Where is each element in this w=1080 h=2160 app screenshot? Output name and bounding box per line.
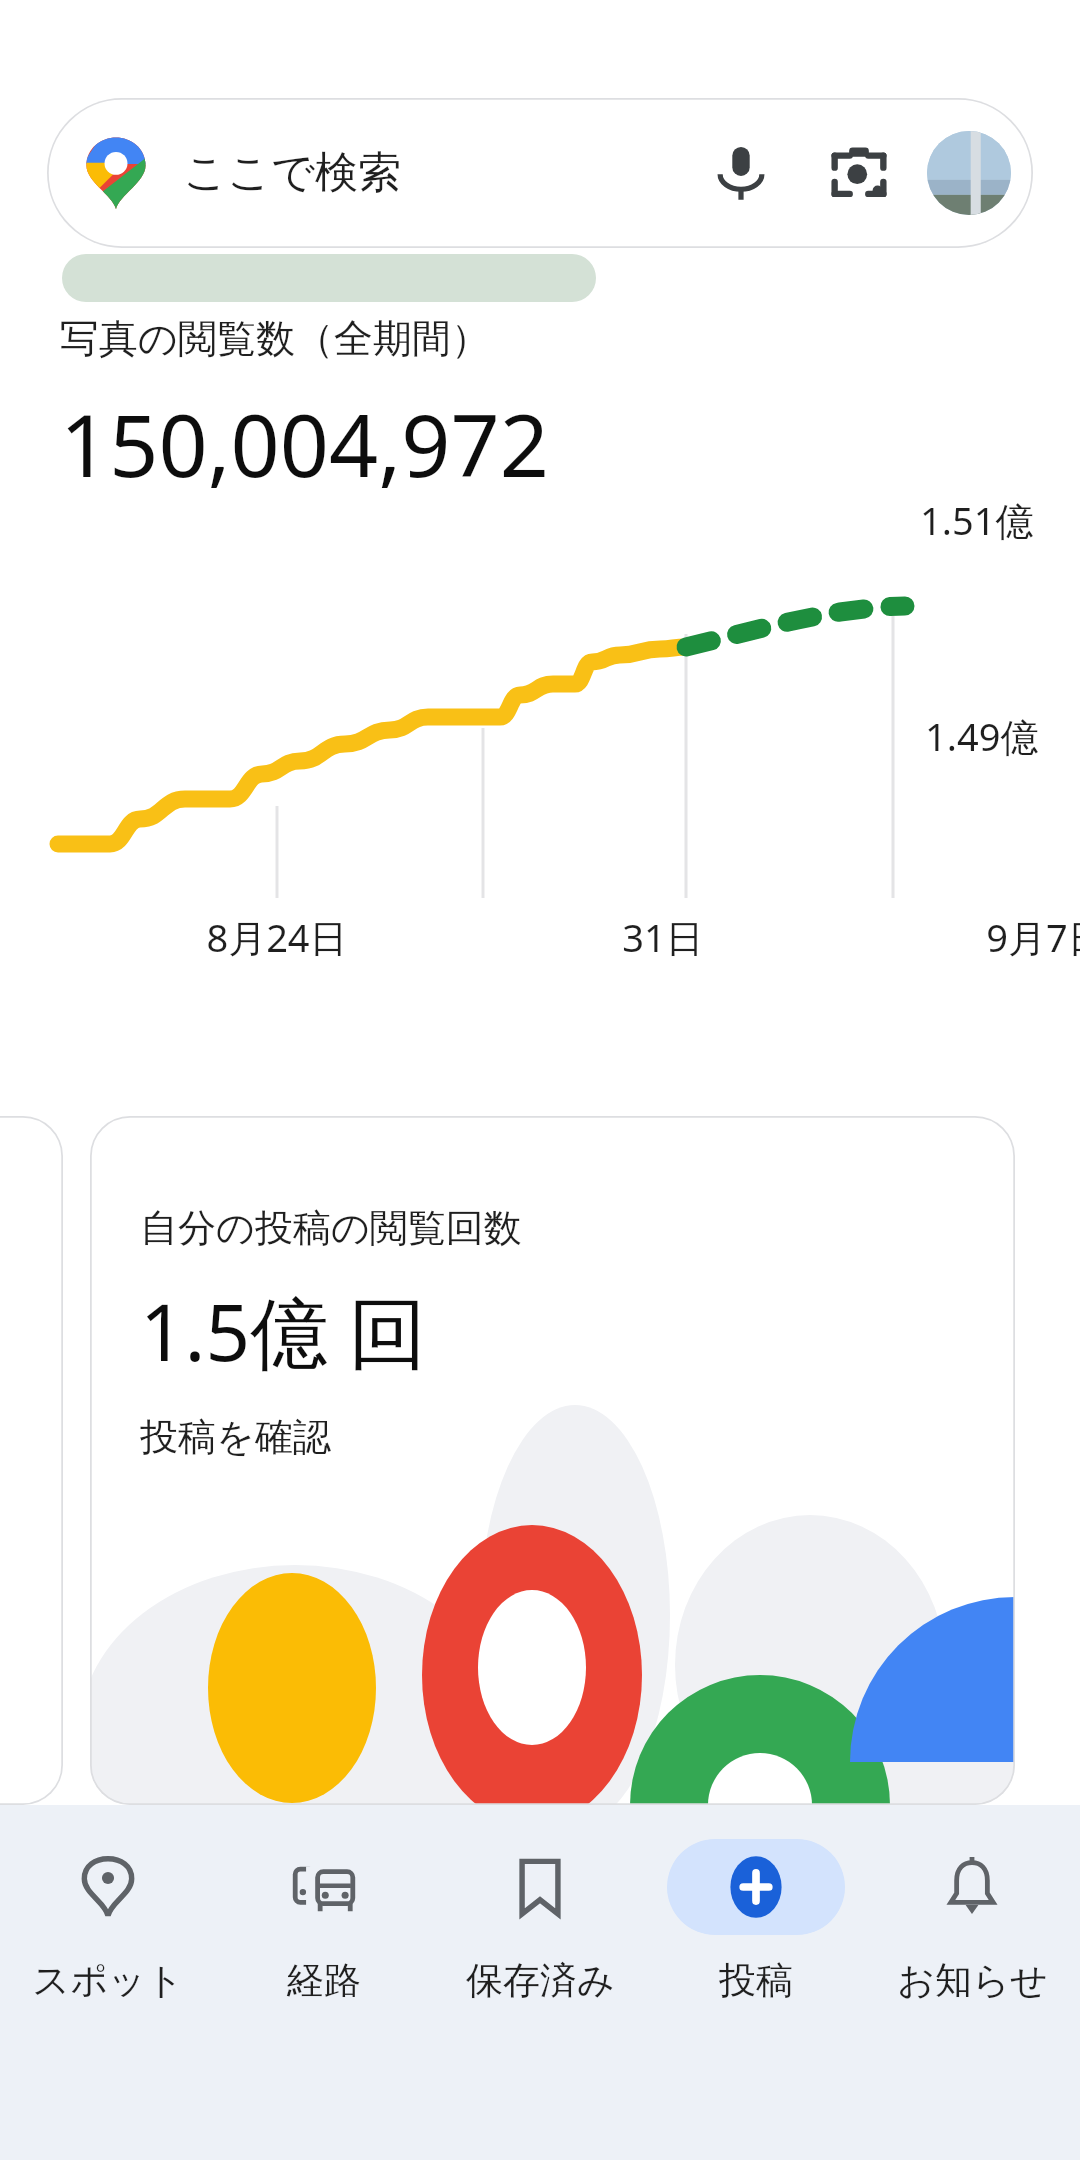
staticText: スポット (32, 1957, 184, 2004)
staticText: 経路 (287, 1957, 361, 2004)
button[interactable]: お知らせ (864, 1839, 1080, 2004)
staticText: 1.51億 (920, 494, 1034, 546)
button[interactable]: ここで検索 (47, 98, 1033, 248)
button[interactable]: Account (921, 125, 1017, 221)
button[interactable] (0, 1116, 63, 1805)
staticText: 自分の投稿の閲覧回数 (140, 1204, 522, 1252)
button[interactable]: 自分の投稿の閲覧回数 (90, 1116, 1015, 1805)
staticText: 9月7日 (956, 911, 1080, 963)
staticText: 保存済み (466, 1957, 615, 2004)
button[interactable]: 保存済み (432, 1839, 648, 2004)
staticText: 写真の閲覧数（全期間） (60, 314, 490, 363)
staticText: 8月24日 (187, 911, 367, 963)
staticText: 150,004,972 (60, 385, 549, 502)
staticText: お知らせ (897, 1957, 1048, 2004)
staticText: 1.5億 回 (140, 1278, 427, 1385)
staticText: 投稿 (719, 1957, 793, 2004)
staticText: 投稿を確認 (140, 1413, 331, 1461)
button[interactable]: 投稿 (648, 1839, 864, 2004)
button[interactable]: Search with Lens (809, 123, 909, 223)
staticText: 1.49億 (925, 710, 1039, 762)
staticText: 31日 (573, 911, 753, 963)
staticText: ここで検索 (183, 146, 402, 200)
button[interactable]: Voice search (691, 123, 791, 223)
button[interactable]: 経路 (216, 1839, 432, 2004)
button[interactable]: スポット (0, 1839, 216, 2004)
